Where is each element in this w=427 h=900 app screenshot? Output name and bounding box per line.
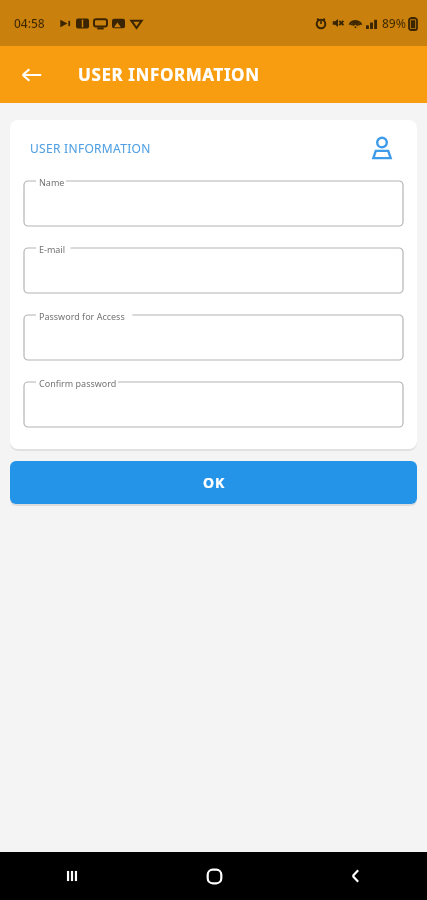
button[interactable]: OK [10,461,417,504]
staticText: USER INFORMATION [30,140,151,156]
button[interactable]: Recent apps [0,852,143,900]
staticText: Password for Access [39,310,125,322]
button[interactable]: Name [24,175,403,226]
button[interactable]: Password for Access [24,309,403,360]
button[interactable]: Back [285,852,427,900]
button[interactable]: Home [143,852,285,900]
staticText: 89% [382,15,406,31]
staticText: Name [39,176,65,188]
staticText: OK [203,473,225,492]
staticText: USER INFORMATION [78,63,260,86]
button[interactable]: E-mail [24,242,403,293]
staticText: 04:58 [14,15,45,31]
button[interactable]: Confirm password [24,376,403,427]
staticText: Confirm password [39,377,117,389]
button[interactable]: Back [12,55,52,95]
staticText: E-mail [39,243,66,255]
button[interactable]: Profile [367,133,397,163]
